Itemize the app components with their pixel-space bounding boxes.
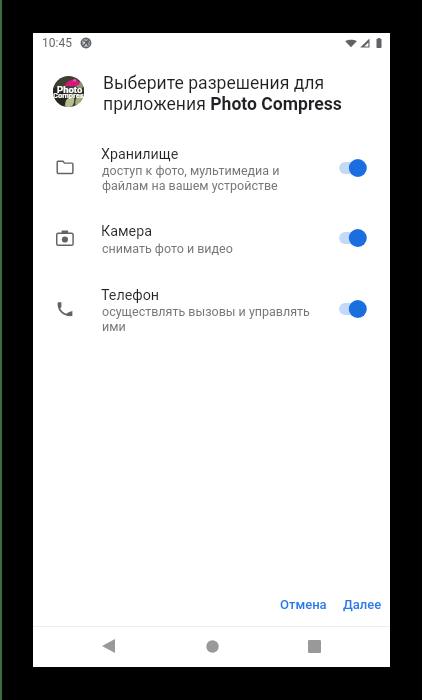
button[interactable]: Toggle Телефон permission <box>337 298 368 320</box>
staticText: доступ к фото, мультимедиа и файлам на в… <box>102 163 312 193</box>
other: Data saver <box>80 37 92 49</box>
button[interactable]: Home <box>188 626 236 666</box>
staticText: Выберите разрешения для приложения Photo… <box>103 73 351 114</box>
button[interactable]: Toggle Хранилище permission <box>337 157 368 179</box>
button[interactable]: Toggle Камера permission <box>337 227 368 249</box>
staticText: 10:45 <box>42 36 72 50</box>
staticText: Отмена <box>280 597 327 612</box>
staticText: снимать фото и видео <box>102 241 233 256</box>
staticText: Далее <box>343 597 382 612</box>
button[interactable]: Recent apps <box>290 626 338 666</box>
staticText: Compress <box>53 91 84 107</box>
staticText: осуществлять вызовы и управлять ими <box>102 304 312 334</box>
button[interactable]: Отмена <box>273 589 333 619</box>
staticText: Хранилище <box>101 146 179 163</box>
button[interactable] <box>33 133 390 203</box>
button[interactable] <box>33 274 390 344</box>
staticText: Photo <box>57 84 83 95</box>
staticText: Камера <box>101 223 152 240</box>
button[interactable]: Далее <box>337 589 388 619</box>
button[interactable] <box>33 210 390 268</box>
staticText: Телефон <box>101 287 160 304</box>
button[interactable]: Back <box>84 626 132 666</box>
